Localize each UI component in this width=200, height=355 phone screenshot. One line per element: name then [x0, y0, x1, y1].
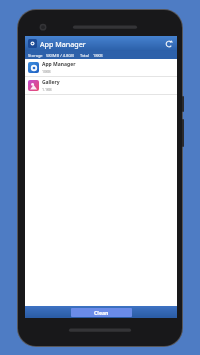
button[interactable]: Refresh	[163, 38, 175, 50]
staticText: App Manager	[42, 61, 76, 68]
staticText: Clean	[94, 309, 109, 316]
staticText: App Manager	[40, 39, 86, 49]
button[interactable]: Gallery	[25, 77, 177, 94]
button[interactable]: App Manager icon	[28, 39, 37, 48]
staticText: 18KB	[93, 53, 103, 58]
staticText: 583MB / 4.8GB	[46, 53, 74, 58]
staticText: Total	[80, 53, 90, 58]
staticText: 10KB	[42, 69, 51, 74]
button[interactable]: App Manager	[25, 59, 177, 76]
staticText: Storage	[28, 53, 43, 58]
staticText: Gallery	[42, 79, 60, 86]
staticText: 1.1KB	[42, 87, 52, 92]
button[interactable]: Clean	[71, 308, 132, 317]
